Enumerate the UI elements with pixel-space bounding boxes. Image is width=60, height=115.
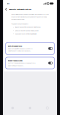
staticText: 9:41: [7, 2, 10, 5]
staticText: approving a request.: [8, 64, 24, 67]
staticText: Check the time and the location: [14, 29, 38, 32]
staticText: Open the notification on this iPhone: [14, 26, 40, 28]
staticText: To approve a request:: [11, 23, 28, 25]
staticText: Ask for the device passcode before: [8, 62, 36, 64]
staticText: Remote authentication: [9, 8, 31, 11]
button[interactable]: Back: [5, 7, 7, 11]
staticText: Use this iPhone to approve sign-in reque…: [11, 13, 49, 20]
staticText: Tap Approve to finish signing in: [14, 33, 36, 35]
staticText: Require passcode: [8, 59, 23, 62]
staticText: this iPhone from other devices.: [8, 50, 31, 52]
staticText: Remote approval: [8, 45, 23, 47]
button[interactable]: Remote approval: [6, 42, 54, 54]
button[interactable]: Require passcode: [6, 57, 54, 69]
staticText: Approve sign-in requests sent to: [8, 48, 33, 50]
